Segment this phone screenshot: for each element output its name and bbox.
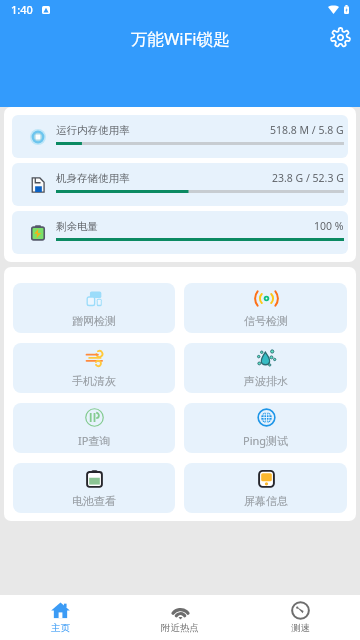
staticText: IP查询	[78, 433, 111, 448]
staticText: 屏幕信息	[244, 494, 288, 508]
staticText: 附近热点	[161, 622, 199, 634]
staticText: 测速	[291, 622, 310, 634]
staticText: 蹭网检测	[72, 314, 116, 328]
staticText: 518.8 M / 5.8 G	[270, 123, 344, 137]
staticText: 剩余电量	[56, 220, 98, 233]
button[interactable]: Ping测试	[184, 403, 347, 453]
staticText: 主页	[51, 622, 70, 634]
button[interactable]: 声波排水	[184, 343, 347, 393]
staticText: 100 %	[314, 219, 344, 233]
button[interactable]: 屏幕信息	[184, 463, 347, 513]
staticText: 运行内存使用率	[56, 124, 130, 137]
staticText: 手机清灰	[72, 374, 116, 388]
button[interactable]: 测速	[240, 595, 360, 640]
staticText: Ping测试	[243, 433, 289, 448]
staticText: 23.8 G / 52.3 G	[272, 171, 344, 185]
button[interactable]: 附近热点	[120, 595, 240, 640]
button[interactable]: 信号检测	[184, 283, 347, 333]
staticText: 信号检测	[244, 314, 288, 328]
staticText: 万能WiFi锁匙	[131, 27, 230, 50]
button[interactable]: 剩余电量	[12, 211, 348, 254]
button[interactable]: 机身存储使用率	[12, 163, 348, 206]
staticText: 声波排水	[244, 374, 288, 388]
button[interactable]: Settings	[326, 24, 354, 50]
staticText: 电池查看	[72, 494, 116, 508]
staticText: 1:40	[11, 2, 33, 17]
button[interactable]: 主页	[0, 595, 120, 640]
button[interactable]: 手机清灰	[13, 343, 175, 393]
button[interactable]: IP查询	[13, 403, 175, 453]
button[interactable]: 运行内存使用率	[12, 115, 348, 158]
button[interactable]: 电池查看	[13, 463, 175, 513]
staticText: 机身存储使用率	[56, 172, 130, 185]
button[interactable]: 蹭网检测	[13, 283, 175, 333]
